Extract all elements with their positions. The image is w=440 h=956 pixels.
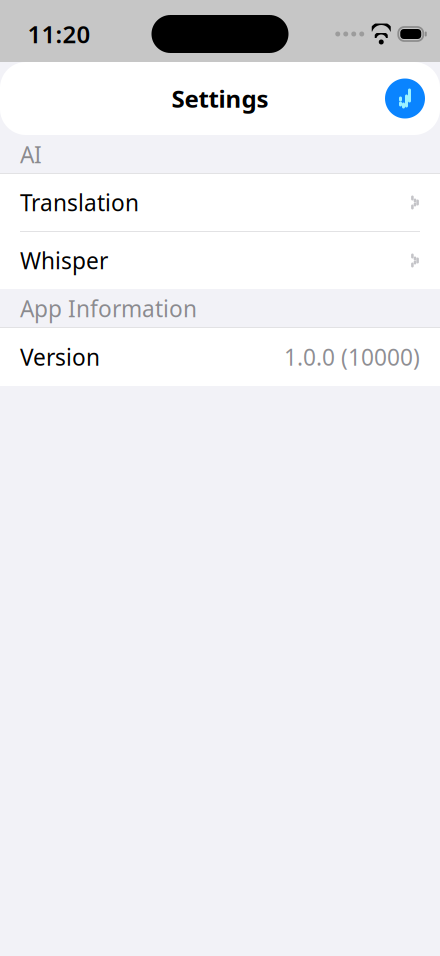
- button[interactable]: Done: [382, 75, 428, 121]
- staticText: App Information: [20, 293, 197, 323]
- staticText: Translation: [20, 187, 139, 217]
- staticText: Settings: [171, 83, 268, 114]
- staticText: 1.0.0 (10000): [284, 342, 420, 372]
- staticText: Version: [20, 342, 100, 372]
- staticText: Whisper: [20, 245, 108, 275]
- button[interactable]: Whisper: [0, 232, 440, 289]
- button[interactable]: Translation: [0, 174, 440, 231]
- staticText: AI: [20, 139, 42, 169]
- staticText: 11:20: [27, 18, 90, 50]
